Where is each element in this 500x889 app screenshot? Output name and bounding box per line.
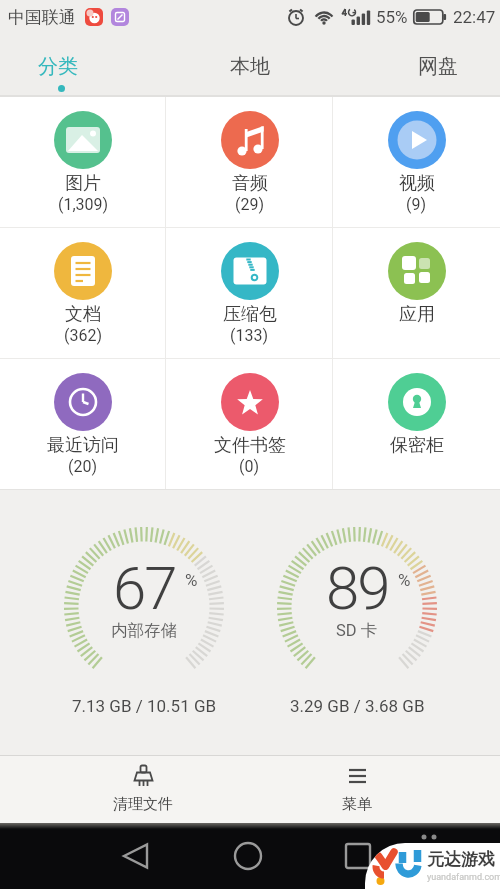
button[interactable]: 元达游戏 [365, 843, 500, 889]
staticText: (362) [64, 326, 103, 345]
button[interactable]: 图片 [0, 97, 166, 227]
staticText: (0) [239, 457, 260, 476]
staticText: 清理文件 [113, 795, 173, 814]
staticText: 55% [376, 7, 408, 27]
staticText: 22:47 [453, 7, 496, 27]
staticText: 网盘 [418, 54, 458, 79]
staticText: 菜单 [342, 795, 372, 814]
staticText: 保密柜 [390, 434, 444, 457]
staticText: SD 卡 [336, 620, 378, 641]
button[interactable]: 文档 [0, 228, 166, 358]
button[interactable]: 音频 [166, 97, 333, 227]
staticText: 分类 [38, 54, 78, 79]
button[interactable]: 网盘 [418, 54, 458, 79]
button[interactable]: 应用 [333, 228, 500, 358]
staticText: 3.29 GB / 3.68 GB [290, 696, 425, 716]
button[interactable]: 分类 [30, 54, 86, 79]
button[interactable]: 压缩包 [166, 228, 333, 358]
staticText: 文档 [65, 303, 101, 326]
button[interactable] [0, 823, 500, 889]
staticText: 图片 [65, 172, 101, 195]
staticText: (9) [406, 195, 427, 214]
button[interactable]: 文件书签 [166, 359, 333, 489]
button[interactable]: 菜单 [322, 763, 392, 814]
staticText: 中国联通 [8, 7, 76, 28]
staticText: (20) [68, 457, 98, 476]
staticText: 视频 [399, 172, 435, 195]
staticText: 89 [326, 553, 389, 617]
staticText: 67 [113, 553, 176, 617]
button[interactable]: 清理文件 [98, 763, 188, 814]
staticText: 最近访问 [47, 434, 119, 457]
button[interactable]: 视频 [333, 97, 500, 227]
staticText: 音频 [232, 172, 268, 195]
button[interactable]: 保密柜 [333, 359, 500, 489]
staticText: 应用 [399, 303, 435, 326]
staticText: (133) [230, 326, 269, 345]
staticText: 本地 [230, 54, 270, 79]
staticText: 内部存储 [111, 620, 177, 641]
staticText: 7.13 GB / 10.51 GB [72, 696, 217, 716]
staticText: (29) [235, 195, 265, 214]
staticText: 压缩包 [223, 303, 277, 326]
staticText: 文件书签 [214, 434, 286, 457]
staticText: % [185, 570, 198, 590]
staticText: % [398, 570, 411, 590]
staticText: yuandafanmd.com [427, 872, 500, 883]
staticText: (1,309) [58, 195, 109, 214]
staticText: 元达游戏 [427, 849, 495, 870]
button[interactable]: 最近访问 [0, 359, 166, 489]
button[interactable]: 本地 [230, 54, 270, 79]
